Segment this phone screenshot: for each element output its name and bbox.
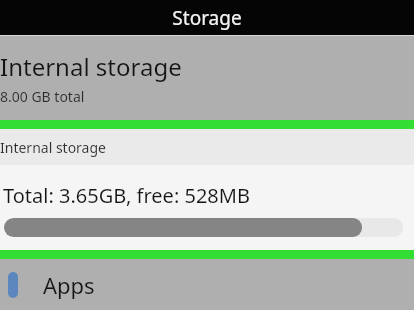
staticText: Internal storage <box>0 138 106 157</box>
button[interactable]: Internal storage <box>0 36 414 120</box>
staticText: Total: 3.65GB, free: 528MB <box>3 182 250 209</box>
staticText: Internal storage <box>0 50 182 83</box>
staticText: Apps <box>43 270 95 300</box>
staticText: 8.00 GB total <box>0 87 85 106</box>
button[interactable]: Total: 3.65GB, free: 528MB <box>0 165 414 250</box>
staticText: Storage <box>172 5 242 31</box>
button[interactable]: Apps <box>0 259 414 310</box>
